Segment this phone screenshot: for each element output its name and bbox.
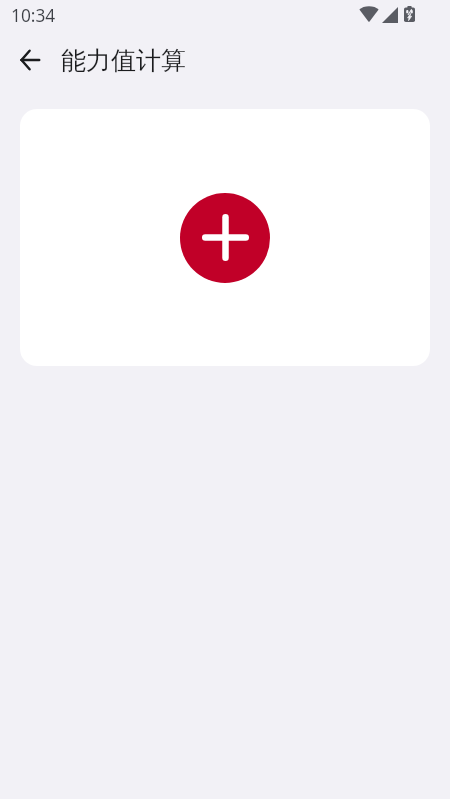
staticText: 能力值计算 [61,45,186,76]
button[interactable]: Add [20,109,430,366]
button[interactable]: Add [180,193,270,283]
button[interactable]: Back [10,40,50,80]
staticText: 10:34 [11,4,56,28]
